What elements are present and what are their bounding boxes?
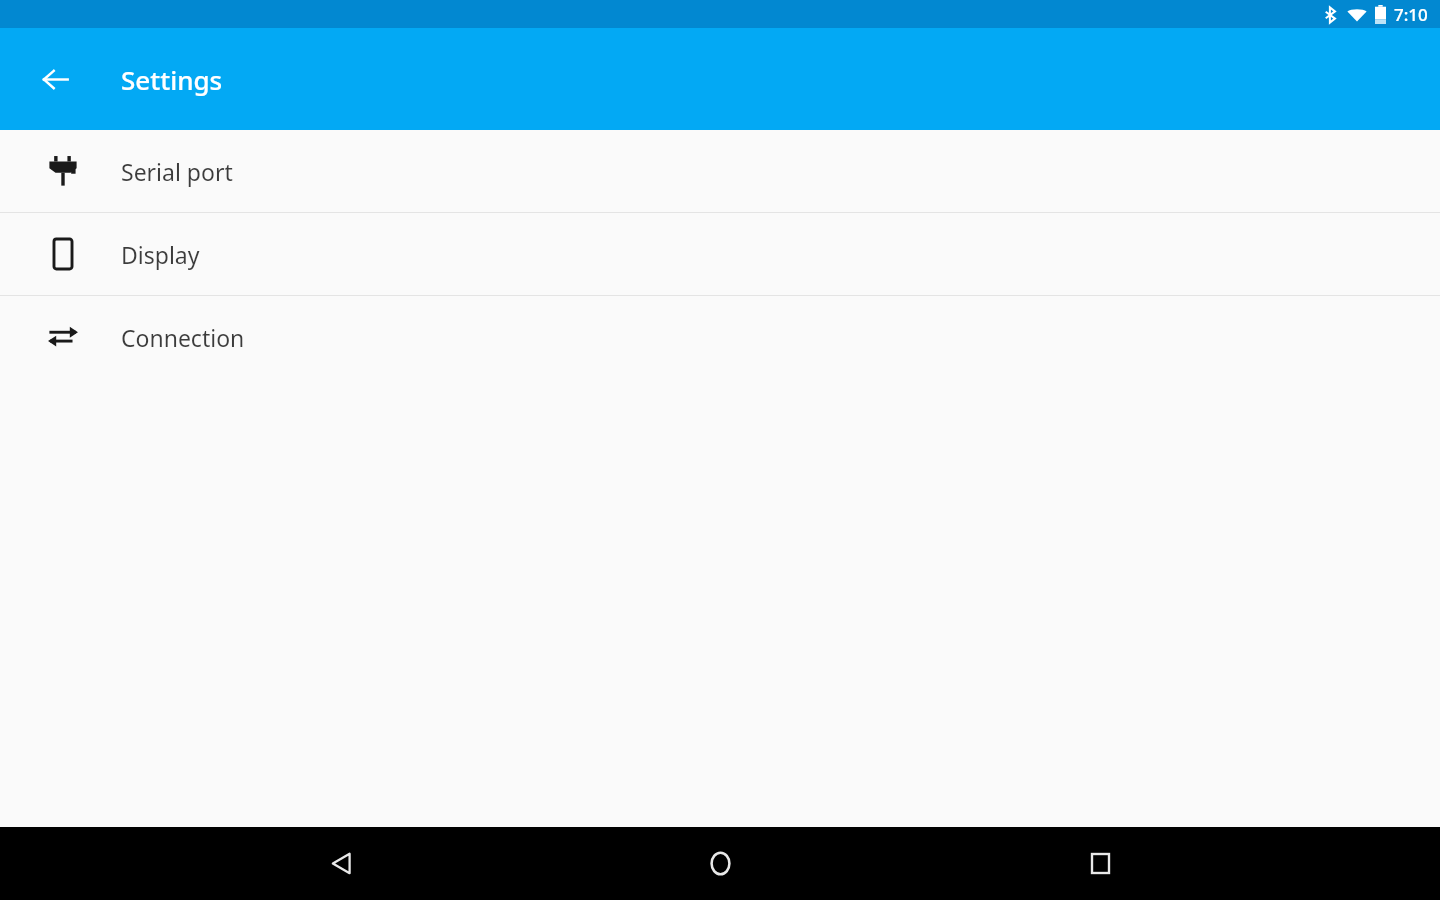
staticText: Settings bbox=[121, 62, 223, 97]
staticText: Serial port bbox=[121, 156, 233, 187]
staticText: 7:10 bbox=[1394, 3, 1428, 26]
button[interactable]: Home bbox=[681, 827, 759, 900]
button[interactable]: Back bbox=[302, 827, 380, 900]
staticText: Connection bbox=[121, 322, 245, 353]
staticText: Display bbox=[121, 239, 200, 270]
button[interactable]: Serial port bbox=[0, 130, 1440, 212]
button[interactable]: Connection bbox=[0, 296, 1440, 378]
button[interactable]: Display bbox=[0, 213, 1440, 295]
button[interactable]: Back bbox=[32, 56, 78, 102]
button[interactable]: Recent apps bbox=[1061, 827, 1139, 900]
